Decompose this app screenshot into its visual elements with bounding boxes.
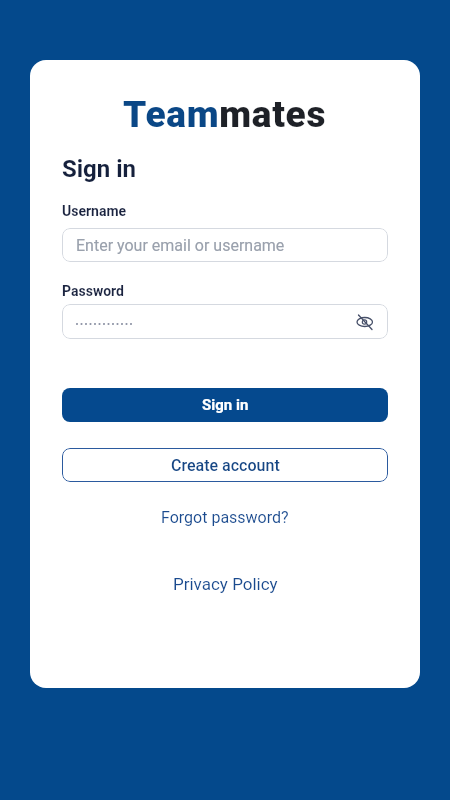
staticText: Enter your email or username [76,236,285,255]
staticText: Create account [171,456,280,475]
staticText: Privacy Policy [173,574,278,594]
button[interactable]: Create account [62,448,388,482]
staticText: Username [62,203,127,219]
staticText: Sign in [202,396,249,414]
staticText: Sign in [62,155,137,183]
button[interactable]: Privacy Policy [62,574,388,594]
staticText: Password [62,283,124,299]
button[interactable]: Forgot password? [62,507,388,527]
staticText: Forgot password? [161,508,289,527]
button[interactable]: Sign in [62,388,388,422]
button[interactable] [62,304,388,339]
button[interactable]: Enter your email or username [62,228,388,262]
staticText: Teammates [123,93,327,134]
